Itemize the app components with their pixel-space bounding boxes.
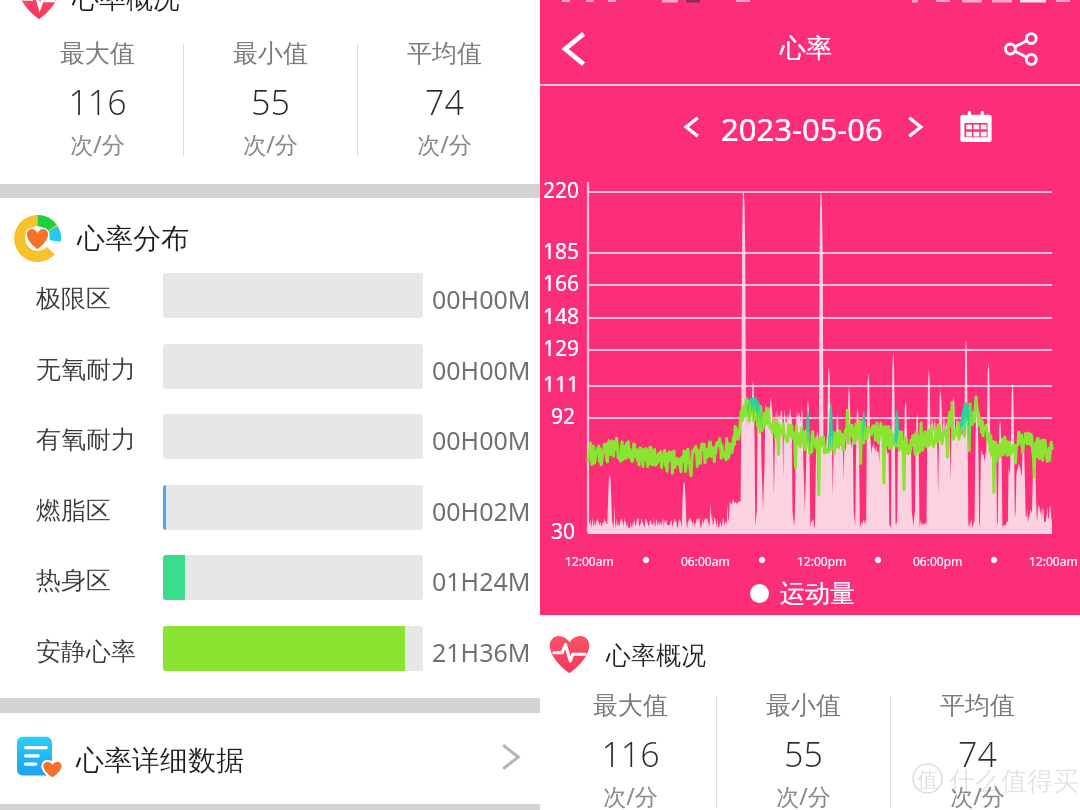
staticText: 次/分	[603, 780, 658, 810]
staticText: 心率详细数据	[76, 743, 244, 778]
staticText: 安静心率	[36, 636, 136, 667]
staticText: 最小值	[233, 38, 308, 69]
staticText: 166	[543, 269, 580, 298]
staticText: 值	[917, 767, 938, 793]
staticText: 最小值	[766, 690, 841, 721]
button[interactable]: Calendar	[959, 110, 993, 144]
staticText: 心率分布	[77, 221, 189, 256]
staticText: 次/分	[950, 780, 1005, 810]
staticText: 最大值	[60, 38, 135, 69]
staticText: 74	[425, 79, 464, 125]
staticText: 平均值	[407, 38, 482, 69]
button[interactable]: Next day	[893, 105, 937, 149]
button[interactable]: Share	[993, 20, 1051, 78]
staticText: 心率概况	[72, 0, 180, 16]
staticText: 运动量	[780, 578, 855, 609]
staticText: 次/分	[243, 128, 298, 159]
button[interactable]: Previous day	[670, 105, 714, 149]
staticText: 06:00pm	[913, 553, 963, 569]
staticText: 次/分	[417, 128, 472, 159]
staticText: 12:00am	[565, 553, 614, 569]
staticText: 74	[958, 731, 997, 777]
staticText: 92	[551, 402, 576, 431]
staticText: 01H24M	[432, 564, 531, 598]
staticText: 什么值得买	[949, 765, 1079, 798]
staticText: 00H00M	[432, 353, 531, 387]
staticText: 220	[543, 176, 580, 205]
staticText: 00H00M	[432, 282, 531, 316]
button[interactable]: Back	[544, 18, 606, 80]
staticText: 心率概况	[606, 640, 706, 671]
staticText: 06:00am	[681, 553, 730, 569]
staticText: 12:00am	[1029, 553, 1078, 569]
button[interactable]: 心率分布	[0, 212, 540, 264]
staticText: 2023-05-06	[721, 108, 883, 150]
button[interactable]: 心率详细数据	[0, 713, 540, 804]
staticText: 热身区	[36, 565, 111, 596]
staticText: 116	[68, 79, 127, 125]
staticText: 平均值	[940, 690, 1015, 721]
staticText: 极限区	[36, 283, 111, 314]
staticText: 00H02M	[432, 494, 531, 528]
staticText: 129	[543, 334, 580, 363]
staticText: 116	[601, 731, 660, 777]
staticText: 55	[784, 731, 823, 777]
staticText: 12:00pm	[797, 553, 847, 569]
staticText: 21H36M	[432, 635, 531, 669]
staticText: 次/分	[776, 780, 831, 810]
staticText: 次/分	[70, 128, 125, 159]
staticText: 55	[251, 79, 290, 125]
staticText: 30	[551, 517, 576, 546]
staticText: 无氧耐力	[36, 354, 136, 385]
staticText: 185	[543, 237, 580, 266]
staticText: 最大值	[593, 690, 668, 721]
staticText: 心率	[536, 32, 1076, 65]
staticText: 燃脂区	[36, 495, 111, 526]
staticText: 148	[543, 302, 580, 331]
staticText: 00H00M	[432, 423, 531, 457]
staticText: 有氧耐力	[36, 424, 136, 455]
staticText: 111	[543, 370, 580, 399]
